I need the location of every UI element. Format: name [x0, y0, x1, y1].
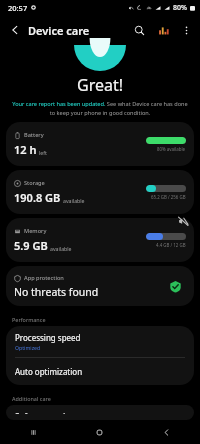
- button[interactable]: Processing speed: [6, 326, 194, 357]
- staticText: available: [50, 245, 72, 252]
- button[interactable]: Back: [4, 19, 26, 41]
- button[interactable]: More options: [175, 19, 197, 41]
- staticText: available: [63, 197, 85, 204]
- staticText: App protection: [24, 274, 64, 282]
- staticText: Auto optimization: [15, 366, 83, 377]
- button[interactable]: Software update: [6, 405, 194, 420]
- staticText: Battery: [24, 131, 44, 139]
- staticText: Memory: [24, 227, 47, 235]
- button[interactable]: Auto optimization: [6, 358, 194, 385]
- staticText: Optimized: [15, 344, 41, 351]
- staticText: Software update: [15, 411, 78, 414]
- staticText: No threats found: [14, 285, 99, 299]
- staticText: Performance: [12, 316, 46, 323]
- button[interactable]: Search: [127, 18, 151, 42]
- staticText: 80% available: [157, 146, 186, 152]
- staticText: 20:57: [8, 3, 28, 13]
- staticText: Storage: [24, 179, 45, 187]
- button[interactable]: Recent apps: [0, 420, 66, 444]
- staticText: 5.9 GB: [14, 238, 48, 253]
- staticText: left: [39, 149, 47, 156]
- button[interactable]: Memory: [6, 218, 194, 262]
- button[interactable]: Back: [133, 420, 200, 444]
- button[interactable]: Usage chart: [151, 18, 175, 42]
- staticText: Great!: [77, 74, 124, 96]
- button[interactable]: App protection: [6, 266, 194, 306]
- staticText: Additional care: [12, 395, 51, 402]
- button[interactable]: Storage: [6, 170, 194, 214]
- staticText: 65.2 GB / 256 GB: [151, 194, 186, 200]
- staticText: 12 h: [14, 142, 37, 157]
- staticText: 80%: [173, 3, 187, 13]
- staticText: Device care: [28, 23, 90, 38]
- other: Mute: [176, 214, 190, 228]
- staticText: Your care report has been updated. See w…: [12, 100, 188, 116]
- staticText: Processing speed: [15, 332, 81, 343]
- button[interactable]: Battery: [6, 122, 194, 166]
- staticText: 190.8 GB: [14, 190, 61, 205]
- staticText: 4.4 GB / 12 GB: [156, 242, 186, 248]
- button[interactable]: Home: [66, 420, 133, 444]
